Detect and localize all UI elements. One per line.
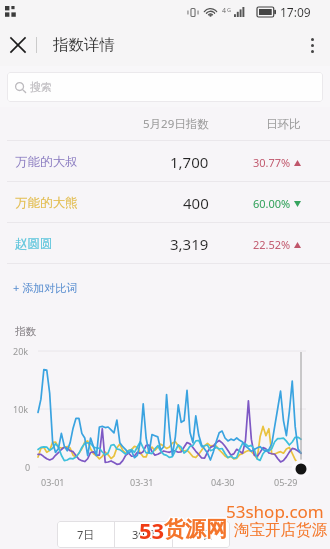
staticText: 万能的大叔 xyxy=(15,154,78,170)
button[interactable]: 万能的大叔 xyxy=(0,141,330,182)
staticText: 货源网 xyxy=(163,517,226,543)
button[interactable]: + 添加对比词 xyxy=(11,276,80,299)
staticText: 5月29日指数 xyxy=(143,116,209,132)
staticText: 03-01 xyxy=(41,476,65,488)
button[interactable]: 赵圆圆 xyxy=(0,223,330,264)
staticText: 货源网 xyxy=(164,515,227,541)
staticText: 22.52% xyxy=(253,237,291,252)
staticText: 05-29 xyxy=(274,476,298,488)
staticText: 03-31 xyxy=(130,476,154,488)
staticText: 53 xyxy=(140,515,166,545)
staticText: 日环比 xyxy=(266,117,301,131)
staticText: 货源网 xyxy=(164,516,227,542)
button[interactable]: 万能的大熊 xyxy=(0,182,330,223)
staticText: 淘宝开店货源 xyxy=(234,520,327,540)
staticText: 17:09 xyxy=(280,4,311,20)
staticText: 指数详情 xyxy=(53,35,115,55)
staticText: 53 xyxy=(139,515,165,545)
staticText: 10k xyxy=(13,403,29,415)
button[interactable]: More options xyxy=(294,24,330,66)
staticText: 货源网 xyxy=(165,517,228,543)
button[interactable]: 7日 xyxy=(57,521,114,548)
staticText: 90日 xyxy=(190,527,214,542)
staticText: 30.77% xyxy=(253,155,291,170)
staticText: 0 xyxy=(25,461,31,473)
staticText: 货源网 xyxy=(163,515,226,541)
staticText: 4 xyxy=(222,6,227,16)
staticText: G xyxy=(227,6,232,13)
staticText: 04-30 xyxy=(211,476,235,488)
staticText: 20k xyxy=(13,345,29,357)
staticText: 53 xyxy=(138,514,164,544)
staticText: 60.00% xyxy=(253,196,291,211)
staticText: 53 xyxy=(140,514,166,544)
staticText: 53 xyxy=(139,516,165,546)
button[interactable]: 90日 xyxy=(173,521,230,548)
staticText: 万能的大熊 xyxy=(15,195,78,211)
staticText: 53 xyxy=(140,516,166,546)
staticText: 3,319 xyxy=(170,234,209,254)
staticText: 货源网 xyxy=(165,515,228,541)
staticText: 53 xyxy=(138,516,164,546)
button[interactable]: 搜索 xyxy=(7,72,323,102)
staticText: 53shop.com xyxy=(226,500,324,523)
staticText: 53 xyxy=(139,514,165,544)
staticText: 400 xyxy=(183,193,209,213)
staticText: 货源网 xyxy=(163,516,226,542)
staticText: + 添加对比词 xyxy=(13,280,78,295)
staticText: 53 xyxy=(138,515,164,545)
button[interactable]: 30日 xyxy=(115,521,172,548)
staticText: 赵圆圆 xyxy=(15,236,53,252)
button[interactable]: Close xyxy=(0,24,36,66)
staticText: 1,700 xyxy=(170,152,209,172)
staticText: 搜索 xyxy=(30,80,52,94)
staticText: 货源网 xyxy=(164,517,227,543)
staticText: 7日 xyxy=(77,527,95,542)
staticText: 货源网 xyxy=(165,516,228,542)
staticText: 指数 xyxy=(15,325,36,338)
staticText: 30日 xyxy=(132,527,156,542)
